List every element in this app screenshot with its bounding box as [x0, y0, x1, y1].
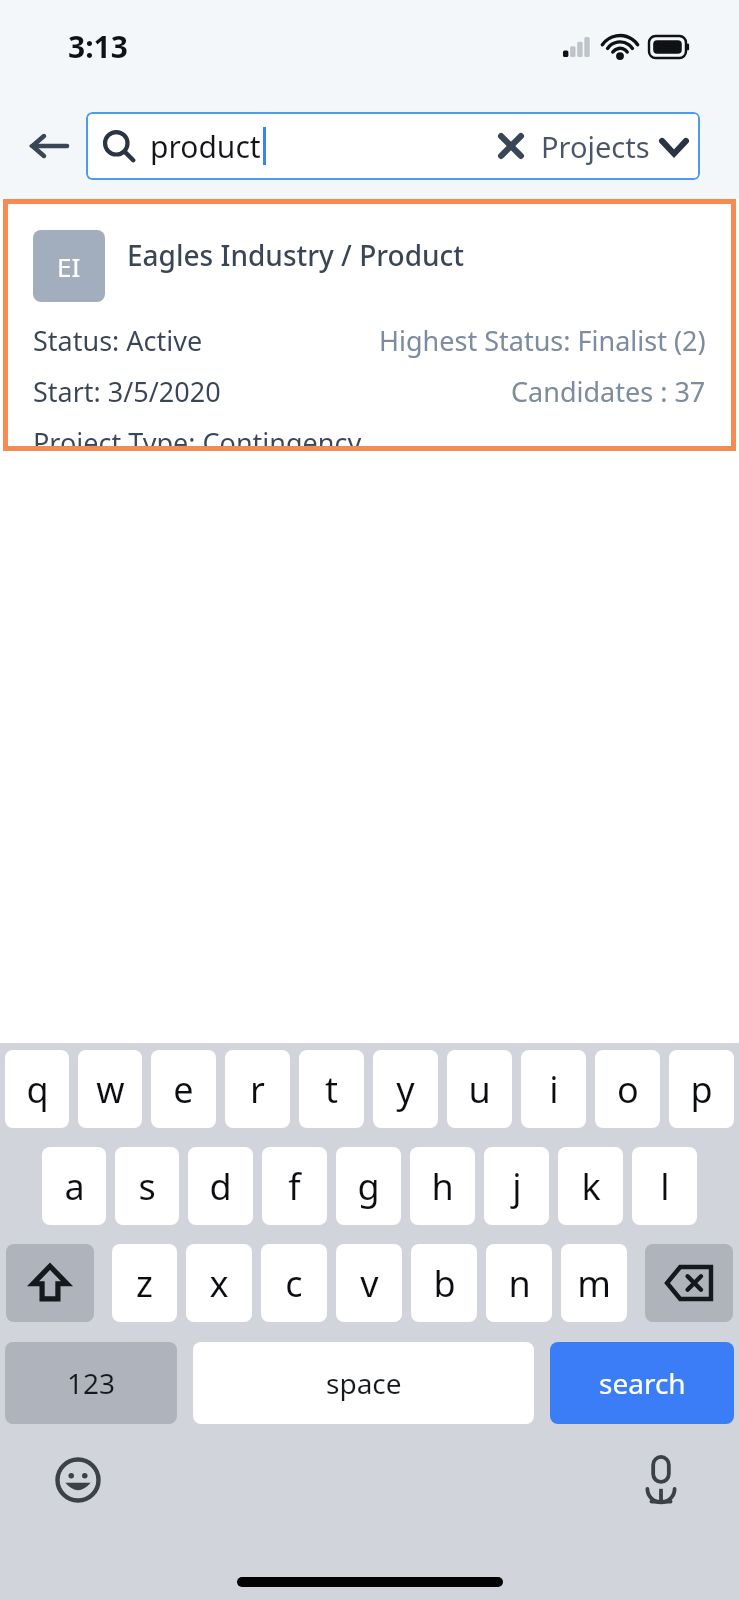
button[interactable]: o	[595, 1050, 660, 1128]
button[interactable]: Clear search	[487, 122, 535, 170]
button[interactable]: k	[558, 1147, 623, 1225]
staticText: l	[660, 1162, 670, 1211]
staticText: EI	[57, 249, 81, 284]
staticText: p	[690, 1065, 713, 1114]
staticText: t	[325, 1065, 338, 1114]
staticText: y	[396, 1065, 415, 1114]
button[interactable]: 123	[5, 1342, 177, 1424]
button[interactable]: g	[336, 1147, 401, 1225]
staticText: v	[360, 1259, 379, 1308]
staticText: c	[285, 1259, 303, 1308]
button[interactable]: search	[550, 1342, 734, 1424]
staticText: Eagles Industry / Product	[127, 236, 465, 274]
button[interactable]: r	[225, 1050, 290, 1128]
staticText: Project Type: Contingency	[33, 424, 362, 446]
button[interactable]: y	[373, 1050, 438, 1128]
staticText: q	[26, 1065, 49, 1114]
button[interactable]: x	[186, 1244, 252, 1322]
staticText: w	[96, 1065, 125, 1114]
button[interactable]: v	[336, 1244, 402, 1322]
button[interactable]: t	[299, 1050, 364, 1128]
button[interactable]: m	[561, 1244, 627, 1322]
button[interactable]: Back	[18, 115, 80, 177]
staticText: d	[209, 1162, 232, 1211]
staticText: 123	[67, 1364, 116, 1402]
button[interactable]: l	[632, 1147, 697, 1225]
staticText: z	[136, 1259, 153, 1308]
staticText: g	[357, 1162, 380, 1211]
button[interactable]: s	[115, 1147, 179, 1225]
staticText: Candidates : 37	[511, 373, 706, 410]
staticText: search	[599, 1364, 686, 1402]
staticText: o	[617, 1065, 639, 1114]
button[interactable]: Shift	[6, 1244, 94, 1322]
button[interactable]: z	[112, 1244, 177, 1322]
button[interactable]: EI	[8, 204, 731, 446]
staticText: a	[64, 1162, 85, 1211]
staticText: u	[468, 1065, 491, 1114]
button[interactable]: Projects	[541, 127, 700, 166]
staticText: h	[431, 1162, 454, 1211]
button[interactable]: f	[262, 1147, 327, 1225]
staticText: Status: Active	[33, 322, 203, 359]
staticText: s	[138, 1162, 156, 1211]
staticText: n	[508, 1259, 531, 1308]
staticText: x	[209, 1259, 229, 1308]
staticText: k	[581, 1162, 601, 1211]
staticText: r	[250, 1065, 265, 1114]
button[interactable]: d	[188, 1147, 253, 1225]
staticText: m	[577, 1259, 611, 1308]
button[interactable]: b	[411, 1244, 477, 1322]
button[interactable]: Backspace	[645, 1244, 733, 1322]
button[interactable]: a	[42, 1147, 106, 1225]
button[interactable]: h	[410, 1147, 475, 1225]
staticText: e	[173, 1065, 194, 1114]
button[interactable]: space	[193, 1342, 534, 1424]
staticText: Start: 3/5/2020	[33, 373, 221, 410]
button[interactable]: product	[86, 112, 700, 180]
button[interactable]: Voice input	[631, 1450, 691, 1510]
staticText: product	[150, 126, 261, 167]
button[interactable]: j	[484, 1147, 549, 1225]
staticText: Projects	[541, 127, 650, 166]
staticText: Highest Status: Finalist (2)	[379, 322, 706, 359]
staticText: b	[433, 1259, 456, 1308]
button[interactable]: q	[5, 1050, 69, 1128]
staticText: i	[549, 1065, 559, 1114]
staticText: space	[326, 1364, 402, 1402]
button[interactable]: Emoji	[48, 1450, 108, 1510]
button[interactable]: p	[669, 1050, 734, 1128]
button[interactable]: i	[521, 1050, 586, 1128]
staticText: j	[512, 1162, 522, 1211]
button[interactable]: n	[486, 1244, 552, 1322]
button[interactable]: e	[151, 1050, 216, 1128]
staticText: f	[288, 1162, 301, 1211]
button[interactable]: u	[447, 1050, 512, 1128]
button[interactable]: w	[78, 1050, 142, 1128]
button[interactable]: c	[261, 1244, 327, 1322]
staticText: 3:13	[68, 26, 128, 67]
